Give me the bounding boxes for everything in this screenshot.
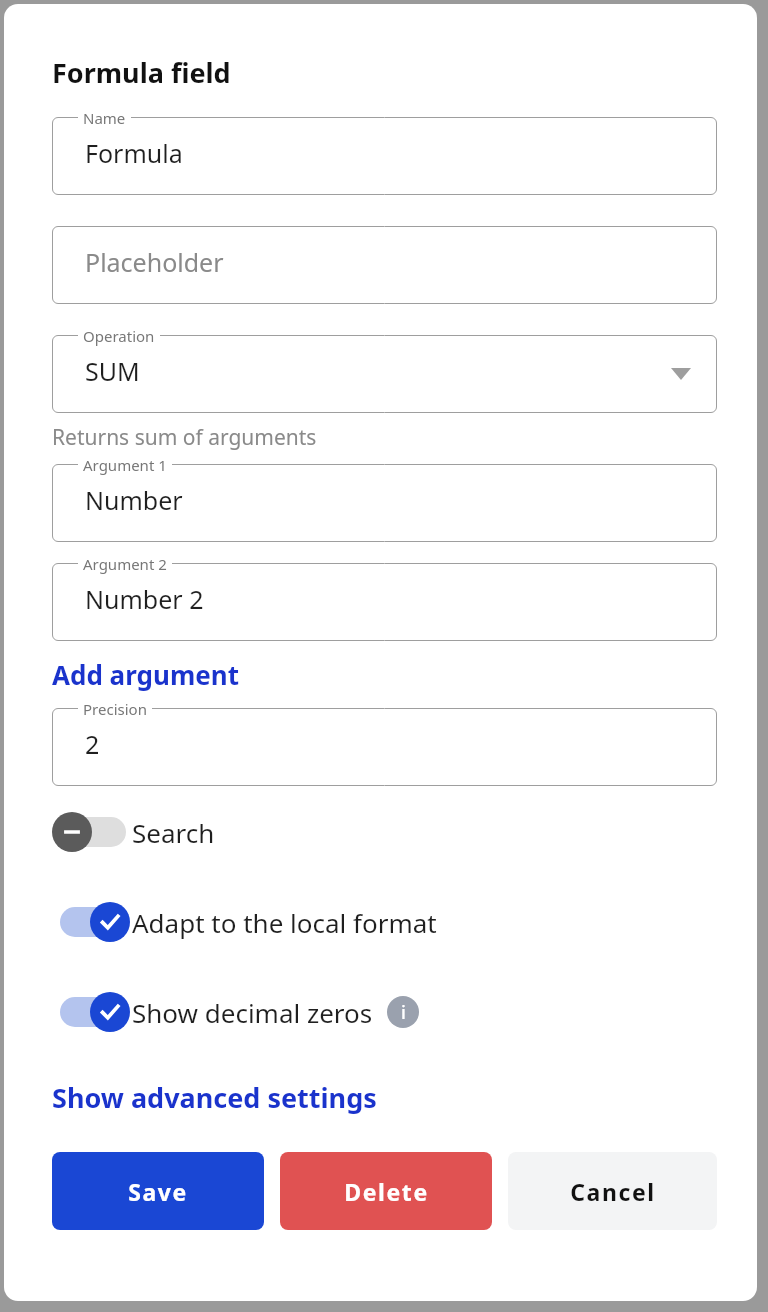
staticText: Search	[132, 815, 215, 850]
staticText: Cancel	[570, 1176, 656, 1207]
button[interactable]: Search	[52, 811, 717, 853]
staticText: Argument 1	[83, 455, 167, 475]
staticText: Formula field	[52, 54, 231, 91]
button[interactable]: Name	[52, 117, 717, 195]
other: Open operation dropdown	[671, 368, 691, 380]
button[interactable]: Save	[52, 1152, 264, 1230]
staticText: Precision	[83, 699, 147, 719]
staticText: Save	[128, 1176, 188, 1207]
button[interactable]: Cancel	[508, 1152, 717, 1230]
staticText: Placeholder	[85, 245, 224, 279]
button[interactable]: More information	[387, 996, 419, 1028]
staticText: Operation	[83, 326, 155, 346]
button[interactable]: Placeholder	[52, 226, 717, 304]
staticText: Name	[83, 108, 126, 128]
staticText: Adapt to the local format	[132, 905, 437, 940]
staticText: Delete	[344, 1176, 429, 1207]
staticText: i	[401, 1000, 406, 1025]
button[interactable]: Show decimal zeros	[52, 991, 717, 1033]
button[interactable]: Argument 1	[52, 464, 717, 542]
staticText: Show decimal zeros	[132, 995, 373, 1030]
staticText: Formula	[85, 136, 183, 170]
button[interactable]: Precision	[52, 708, 717, 786]
button[interactable]: Adapt to the local format	[52, 901, 717, 943]
button[interactable]: Add argument	[52, 657, 239, 692]
button[interactable]: Show advanced settings	[52, 1079, 377, 1116]
staticText: 2	[85, 727, 100, 761]
staticText: Add argument	[52, 657, 239, 692]
staticText: SUM	[85, 354, 140, 388]
staticText: Show advanced settings	[52, 1079, 377, 1116]
button[interactable]: Delete	[280, 1152, 492, 1230]
button[interactable]: Argument 2	[52, 563, 717, 641]
staticText: Number 2	[85, 582, 204, 616]
staticText: Number	[85, 483, 183, 517]
staticText: Returns sum of arguments	[52, 423, 317, 452]
button[interactable]: Operation	[52, 335, 717, 413]
staticText: Argument 2	[83, 554, 167, 574]
